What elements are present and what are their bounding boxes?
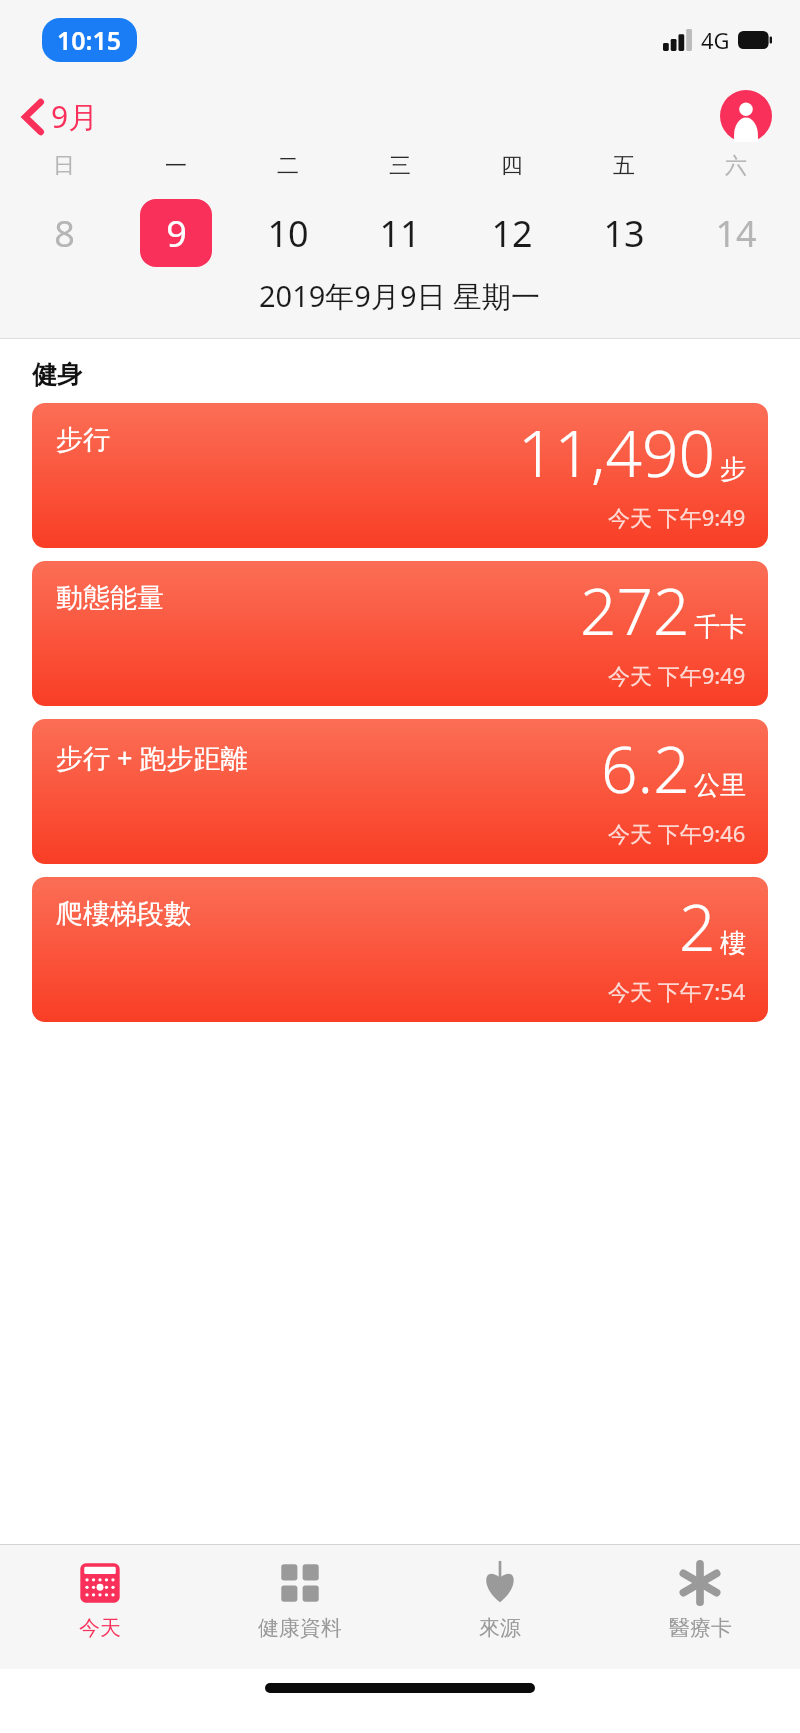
staticText: 千卡 — [694, 611, 746, 644]
button[interactable]: 步行 — [32, 403, 768, 548]
staticText: 樓 — [720, 927, 746, 960]
staticText: 6.2 — [601, 725, 690, 812]
button[interactable]: Profile — [720, 90, 772, 142]
staticText: 今天 下午9:49 — [608, 660, 746, 690]
staticText: 10:15 — [57, 23, 122, 57]
staticText: 健康資料 — [258, 1615, 342, 1641]
staticText: 一 — [165, 152, 187, 180]
staticText: 四 — [501, 152, 523, 180]
staticText: 日 — [53, 152, 75, 180]
button[interactable]: 13 — [568, 198, 680, 268]
staticText: 今天 — [79, 1615, 121, 1641]
button[interactable]: 動態能量 — [32, 561, 768, 706]
button[interactable]: 9 — [120, 198, 232, 268]
staticText: 動態能量 — [56, 581, 164, 615]
staticText: 公里 — [694, 769, 746, 802]
staticText: 2 — [679, 883, 716, 970]
staticText: 爬樓梯段數 — [56, 897, 191, 931]
button[interactable]: 醫療卡 — [600, 1545, 800, 1669]
staticText: 4G — [701, 25, 730, 55]
staticText: 五 — [613, 152, 635, 180]
button[interactable]: 健康資料 — [200, 1545, 400, 1669]
staticText: 健身 — [32, 359, 82, 390]
button[interactable]: 爬樓梯段數 — [32, 877, 768, 1022]
staticText: 8 — [54, 209, 75, 258]
staticText: 步行 + 跑步距離 — [56, 739, 248, 776]
button[interactable]: 步行 + 跑步距離 — [32, 719, 768, 864]
button[interactable]: 14 — [680, 198, 792, 268]
staticText: 醫療卡 — [669, 1615, 732, 1641]
staticText: 步行 — [56, 423, 110, 457]
staticText: 272 — [580, 567, 690, 654]
staticText: 今天 下午7:54 — [608, 976, 746, 1006]
staticText: 13 — [603, 209, 645, 258]
button[interactable]: 12 — [456, 198, 568, 268]
button[interactable]: 10 — [232, 198, 344, 268]
staticText: 步 — [720, 453, 746, 486]
staticText: 今天 下午9:49 — [608, 502, 746, 532]
staticText: 11 — [379, 209, 421, 258]
staticText: 10 — [267, 209, 309, 258]
staticText: 二 — [277, 152, 299, 180]
staticText: 12 — [491, 209, 533, 258]
button[interactable]: 11 — [344, 198, 456, 268]
staticText: 來源 — [479, 1615, 521, 1641]
staticText: 14 — [715, 209, 757, 258]
button[interactable]: 來源 — [400, 1545, 600, 1669]
staticText: 9 — [166, 209, 187, 258]
staticText: 2019年9月9日 星期一 — [259, 276, 541, 316]
button[interactable]: 9月 — [18, 92, 103, 141]
staticText: 9月 — [51, 96, 99, 137]
staticText: 11,490 — [518, 409, 716, 496]
button[interactable]: 8 — [8, 198, 120, 268]
staticText: 今天 下午9:46 — [608, 818, 746, 848]
button[interactable]: 今天 — [0, 1545, 200, 1669]
staticText: 六 — [725, 152, 747, 180]
staticText: 三 — [389, 152, 411, 180]
